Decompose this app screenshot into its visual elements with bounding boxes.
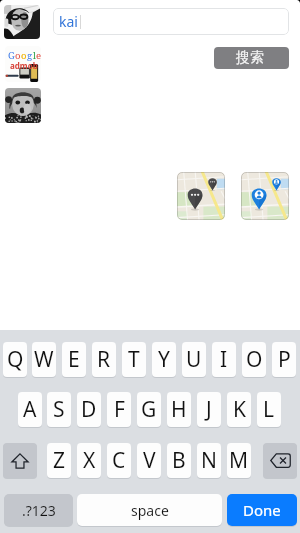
- button[interactable]: G: [5, 46, 41, 82]
- button[interactable]: W: [32, 342, 56, 377]
- staticText: Done: [243, 500, 281, 520]
- staticText: W: [34, 345, 54, 374]
- staticText: N: [201, 446, 217, 475]
- staticText: R: [97, 345, 111, 374]
- button[interactable]: F: [107, 392, 131, 427]
- button[interactable]: Done: [227, 494, 297, 526]
- button[interactable]: H: [167, 392, 191, 427]
- button[interactable]: B: [167, 443, 191, 478]
- button[interactable]: E: [62, 342, 86, 377]
- button[interactable]: space: [77, 494, 222, 526]
- button[interactable]: Q: [3, 342, 27, 377]
- button[interactable]: G: [137, 392, 161, 427]
- button[interactable]: A: [18, 392, 42, 427]
- staticText: o: [21, 49, 27, 62]
- staticText: kai: [59, 12, 78, 31]
- staticText: K: [233, 395, 246, 424]
- button[interactable]: T: [122, 342, 146, 377]
- button[interactable]: Y: [152, 342, 176, 377]
- staticText: S: [53, 395, 65, 424]
- button[interactable]: O: [242, 342, 266, 377]
- button[interactable]: Map result: [177, 172, 225, 220]
- button[interactable]: Map result: [241, 172, 289, 220]
- button[interactable]: .?123: [4, 494, 73, 526]
- staticText: J: [206, 395, 212, 424]
- button[interactable]: U: [182, 342, 206, 377]
- button[interactable]: J: [197, 392, 221, 427]
- staticText: F: [114, 395, 125, 424]
- staticText: A: [23, 395, 37, 424]
- staticText: G: [141, 395, 157, 424]
- staticText: o: [15, 49, 21, 62]
- button[interactable]: D: [77, 392, 101, 427]
- staticText: B: [172, 446, 186, 475]
- button[interactable]: R: [92, 342, 116, 377]
- staticText: L: [263, 395, 275, 424]
- button[interactable]: Shift: [3, 443, 37, 478]
- staticText: admob: [10, 60, 38, 71]
- staticText: .?123: [22, 501, 56, 520]
- button[interactable]: 搜索: [214, 47, 289, 69]
- button[interactable]: C: [107, 443, 131, 478]
- staticText: T: [128, 345, 140, 374]
- staticText: C: [112, 446, 126, 475]
- staticText: Z: [53, 446, 66, 475]
- button[interactable]: K: [227, 392, 251, 427]
- staticText: g: [27, 49, 33, 62]
- button[interactable]: Backspace: [263, 443, 297, 478]
- staticText: Q: [7, 345, 24, 374]
- staticText: l: [33, 49, 36, 62]
- button[interactable]: kai: [53, 8, 289, 35]
- staticText: U: [186, 345, 202, 374]
- button[interactable]: N: [197, 443, 221, 478]
- button[interactable]: [5, 88, 41, 123]
- button[interactable]: P: [272, 342, 296, 377]
- staticText: V: [143, 446, 156, 475]
- staticText: X: [83, 446, 96, 475]
- staticText: e: [36, 49, 41, 62]
- button[interactable]: L: [257, 392, 281, 427]
- staticText: space: [131, 501, 169, 520]
- staticText: H: [171, 395, 187, 424]
- button[interactable]: S: [47, 392, 71, 427]
- staticText: Y: [158, 345, 170, 374]
- staticText: P: [278, 345, 291, 374]
- staticText: O: [246, 345, 263, 374]
- button[interactable]: V: [137, 443, 161, 478]
- button[interactable]: I: [212, 342, 236, 377]
- button[interactable]: M: [227, 443, 251, 478]
- button[interactable]: X: [77, 443, 101, 478]
- staticText: G: [8, 49, 15, 62]
- staticText: I: [220, 345, 228, 374]
- staticText: D: [81, 395, 97, 424]
- button[interactable]: [4, 5, 40, 39]
- button[interactable]: Z: [47, 443, 71, 478]
- staticText: E: [68, 345, 80, 374]
- staticText: 搜索: [236, 49, 264, 67]
- staticText: M: [229, 446, 249, 475]
